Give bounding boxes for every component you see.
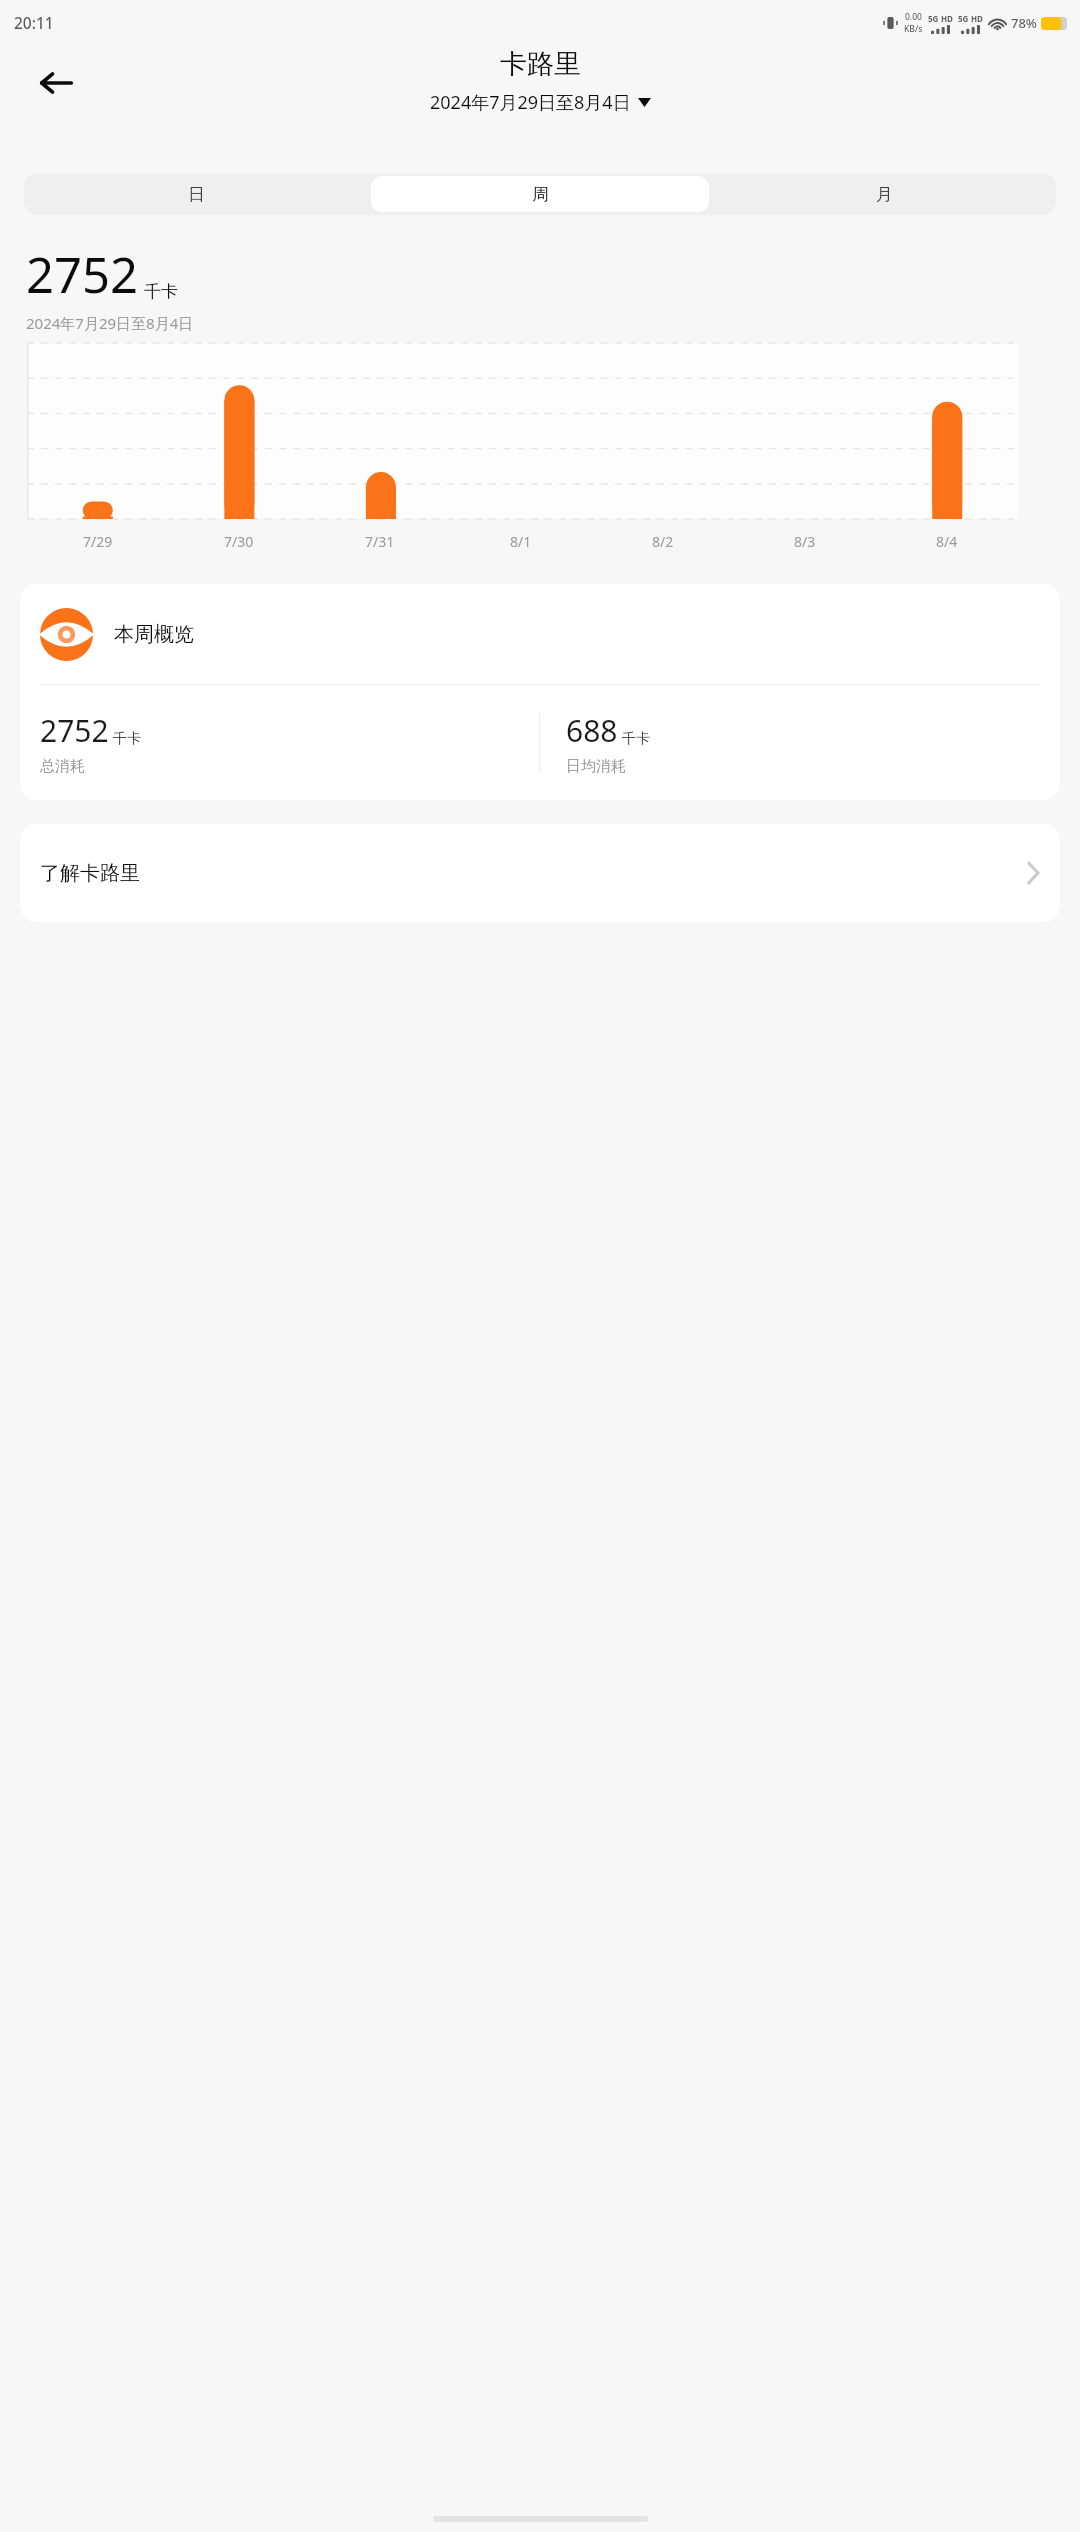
staticText: 20:11 — [14, 12, 54, 33]
staticText: 月 — [876, 184, 893, 205]
button[interactable]: 日 — [27, 176, 365, 212]
staticText: 8/3 — [794, 532, 816, 551]
staticText: 千卡 — [113, 730, 141, 748]
staticText: 5G — [958, 13, 969, 24]
staticText: 78% — [1011, 14, 1037, 32]
staticText: 本周概览 — [114, 622, 194, 647]
staticText: 0.00 — [905, 11, 922, 23]
staticText: 7/31 — [365, 532, 395, 551]
staticText: 7/30 — [224, 532, 254, 551]
button[interactable]: Back — [26, 53, 86, 113]
staticText: 8/4 — [936, 532, 958, 551]
staticText: 8/2 — [652, 532, 674, 551]
staticText: 了解卡路里 — [40, 861, 140, 886]
staticText: 2024年7月29日至8月4日 — [26, 313, 194, 333]
button[interactable]: 2024年7月29日至8月4日 — [426, 88, 655, 117]
staticText: 总消耗 — [40, 757, 85, 776]
button[interactable]: 了解卡路里 — [20, 824, 1060, 922]
staticText: 千卡 — [622, 730, 650, 748]
staticText: 日 — [188, 184, 205, 205]
staticText: HD — [971, 13, 983, 24]
button[interactable]: 本周概览 — [20, 584, 1060, 800]
staticText: KB/s — [904, 23, 923, 35]
staticText: 卡路里 — [500, 47, 581, 81]
staticText: 日均消耗 — [566, 757, 626, 776]
staticText: 5G — [928, 13, 939, 24]
staticText: 8/1 — [510, 532, 532, 551]
button[interactable]: 月 — [715, 176, 1053, 212]
staticText: 688 — [566, 710, 618, 751]
staticText: 2024年7月29日至8月4日 — [430, 90, 631, 115]
staticText: 7/29 — [83, 532, 113, 551]
staticText: 2752 — [26, 241, 139, 308]
staticText: HD — [941, 13, 953, 24]
button[interactable]: 周 — [371, 176, 709, 212]
staticText: 千卡 — [144, 281, 178, 302]
staticText: 周 — [532, 184, 549, 205]
staticText: 2752 — [40, 710, 109, 751]
